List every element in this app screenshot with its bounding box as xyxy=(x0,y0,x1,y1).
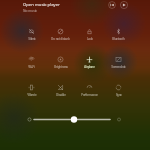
button[interactable]: Lock xyxy=(75,19,104,45)
button[interactable]: Vibrate xyxy=(17,75,46,101)
button[interactable]: Disable xyxy=(46,75,75,101)
button[interactable]: Performance xyxy=(75,75,104,101)
staticText: Brightness xyxy=(54,65,68,69)
button[interactable] xyxy=(0,112,150,128)
button[interactable]: Brightness xyxy=(46,47,75,73)
staticText: Airplane xyxy=(84,65,95,69)
button[interactable]: Sync xyxy=(104,75,133,101)
button[interactable]: Wi-Fi xyxy=(17,47,46,73)
button[interactable]: Bluetooth xyxy=(104,19,133,45)
button[interactable]: Silent xyxy=(17,19,46,45)
button[interactable]: Open music player xyxy=(0,0,150,16)
staticText: Bluetooth xyxy=(112,37,125,41)
staticText: Screenshot xyxy=(111,65,126,69)
button[interactable]: Airplane xyxy=(75,47,104,73)
staticText: Silent xyxy=(28,37,36,41)
button[interactable]: Do not disturb xyxy=(46,19,75,45)
staticText: Sync xyxy=(116,93,122,97)
staticText: Wi-Fi xyxy=(28,65,35,69)
staticText: Vibrate xyxy=(27,93,37,97)
staticText: Lock xyxy=(87,37,93,41)
button[interactable]: Play xyxy=(116,0,132,13)
staticText: Open music player xyxy=(23,2,60,8)
staticText: Performance xyxy=(81,93,98,97)
staticText: Do not disturb xyxy=(51,37,70,41)
button[interactable]: Screenshot xyxy=(104,47,133,73)
staticText: No music xyxy=(23,9,38,13)
button[interactable]: Previous track xyxy=(104,0,120,13)
staticText: Disable xyxy=(56,93,66,97)
